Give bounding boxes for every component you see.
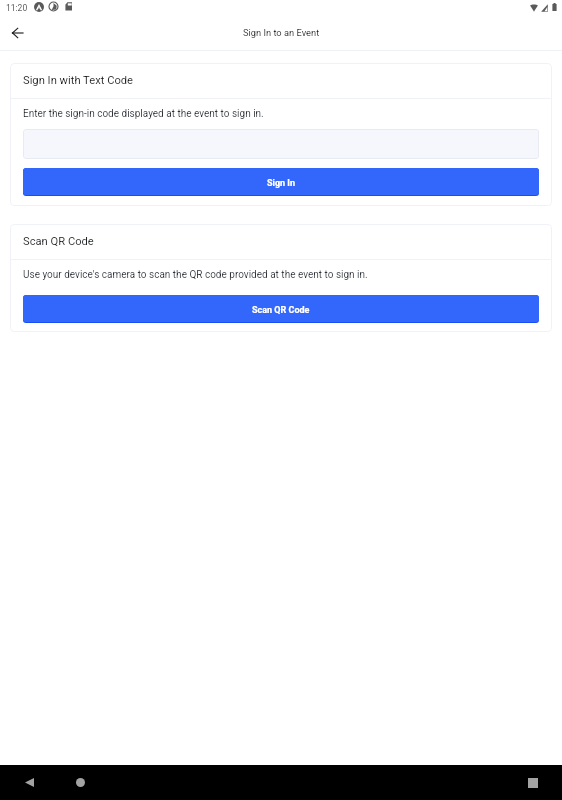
staticText: 11:20 bbox=[6, 3, 28, 13]
button[interactable] bbox=[23, 129, 539, 159]
staticText: Sign In with Text Code bbox=[23, 74, 134, 87]
staticText: Enter the sign-in code displayed at the … bbox=[23, 108, 264, 120]
button[interactable]: Scan QR Code bbox=[23, 295, 539, 323]
staticText: Sign In to an Event bbox=[243, 27, 320, 38]
staticText: Scan QR Code bbox=[252, 305, 310, 316]
button[interactable]: Sign In bbox=[23, 168, 539, 196]
button[interactable]: Home bbox=[68, 770, 93, 795]
button[interactable]: Recent apps bbox=[520, 770, 545, 795]
staticText: Use your device's camera to scan the QR … bbox=[23, 269, 368, 281]
staticText: Sign In bbox=[267, 178, 296, 189]
staticText: Scan QR Code bbox=[23, 235, 94, 248]
button[interactable]: Back bbox=[17, 770, 42, 795]
button[interactable]: Back bbox=[4, 19, 31, 46]
